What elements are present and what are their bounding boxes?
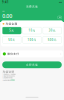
staticText: 10元: [28, 29, 35, 32]
staticText: 30元: [49, 29, 56, 32]
staticText: 在线客服: [10, 79, 14, 81]
staticText: 3. 充值金额不支持退款: [2, 77, 12, 79]
staticText: 5元: [9, 29, 14, 32]
button[interactable]: 500元: [43, 36, 61, 43]
button[interactable]: 5元: [3, 27, 21, 34]
staticText: 明细: [59, 17, 61, 18]
staticText: 充值金额: [5, 22, 17, 25]
button[interactable]: 10元: [23, 27, 41, 34]
button[interactable]: 50元: [3, 36, 21, 43]
staticText: ▮▮ ▮: [59, 1, 62, 3]
staticText: 充值说明: [2, 70, 14, 74]
staticText: ›: [60, 52, 61, 56]
staticText: 话费充值: [26, 5, 38, 8]
staticText: 立即充值: [26, 63, 38, 66]
staticText: 50元: [8, 38, 15, 42]
button[interactable]: 30元: [43, 27, 61, 34]
staticText: 4. 如有疑问请联系: [2, 79, 10, 81]
button[interactable]: 100元: [23, 36, 41, 43]
staticText: 微信支付: [7, 52, 19, 56]
button[interactable]: 微信支付: [0, 50, 64, 57]
staticText: 0.00: [2, 12, 12, 19]
staticText: 500元: [48, 38, 57, 42]
staticText: 9:41: [2, 0, 9, 4]
staticText: 余额: [2, 10, 4, 12]
staticText: 2. 请核对手机号码后再充值: [2, 75, 14, 77]
staticText: 100元: [27, 38, 36, 42]
button[interactable]: 明细: [57, 16, 62, 19]
button[interactable]: 立即充值: [0, 61, 64, 68]
staticText: 1. 充值成功后1-5分钟内到账: [2, 73, 15, 75]
button[interactable]: 在线客服: [10, 79, 14, 81]
